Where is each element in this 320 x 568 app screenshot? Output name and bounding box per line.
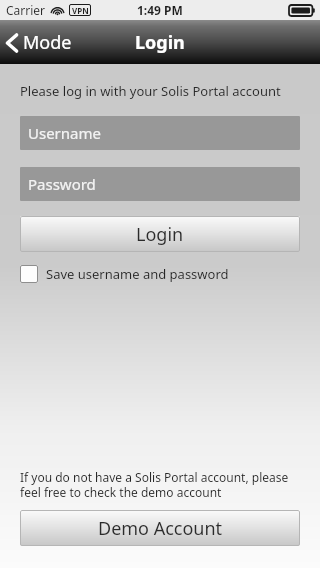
button[interactable]: Login [20, 216, 300, 252]
staticText: Save username and password [46, 265, 229, 283]
staticText: Password [28, 174, 96, 194]
staticText: Login [135, 30, 185, 55]
staticText: Carrier [6, 2, 46, 18]
staticText: If you do not have a Solis Portal accoun… [20, 469, 304, 500]
staticText: 1:49 PM [137, 2, 183, 18]
staticText: Login [136, 222, 184, 247]
staticText: Please log in with your Solis Portal acc… [20, 82, 281, 100]
button[interactable]: Username [20, 116, 300, 150]
button[interactable]: Save username and password [20, 265, 229, 283]
button[interactable]: Password [20, 167, 300, 201]
staticText: Mode [23, 30, 72, 55]
staticText: Demo Account [98, 516, 223, 541]
staticText: Username [28, 123, 101, 143]
staticText: VPN [72, 5, 89, 16]
button[interactable]: Demo Account [20, 510, 300, 546]
button[interactable]: Mode [0, 26, 82, 59]
